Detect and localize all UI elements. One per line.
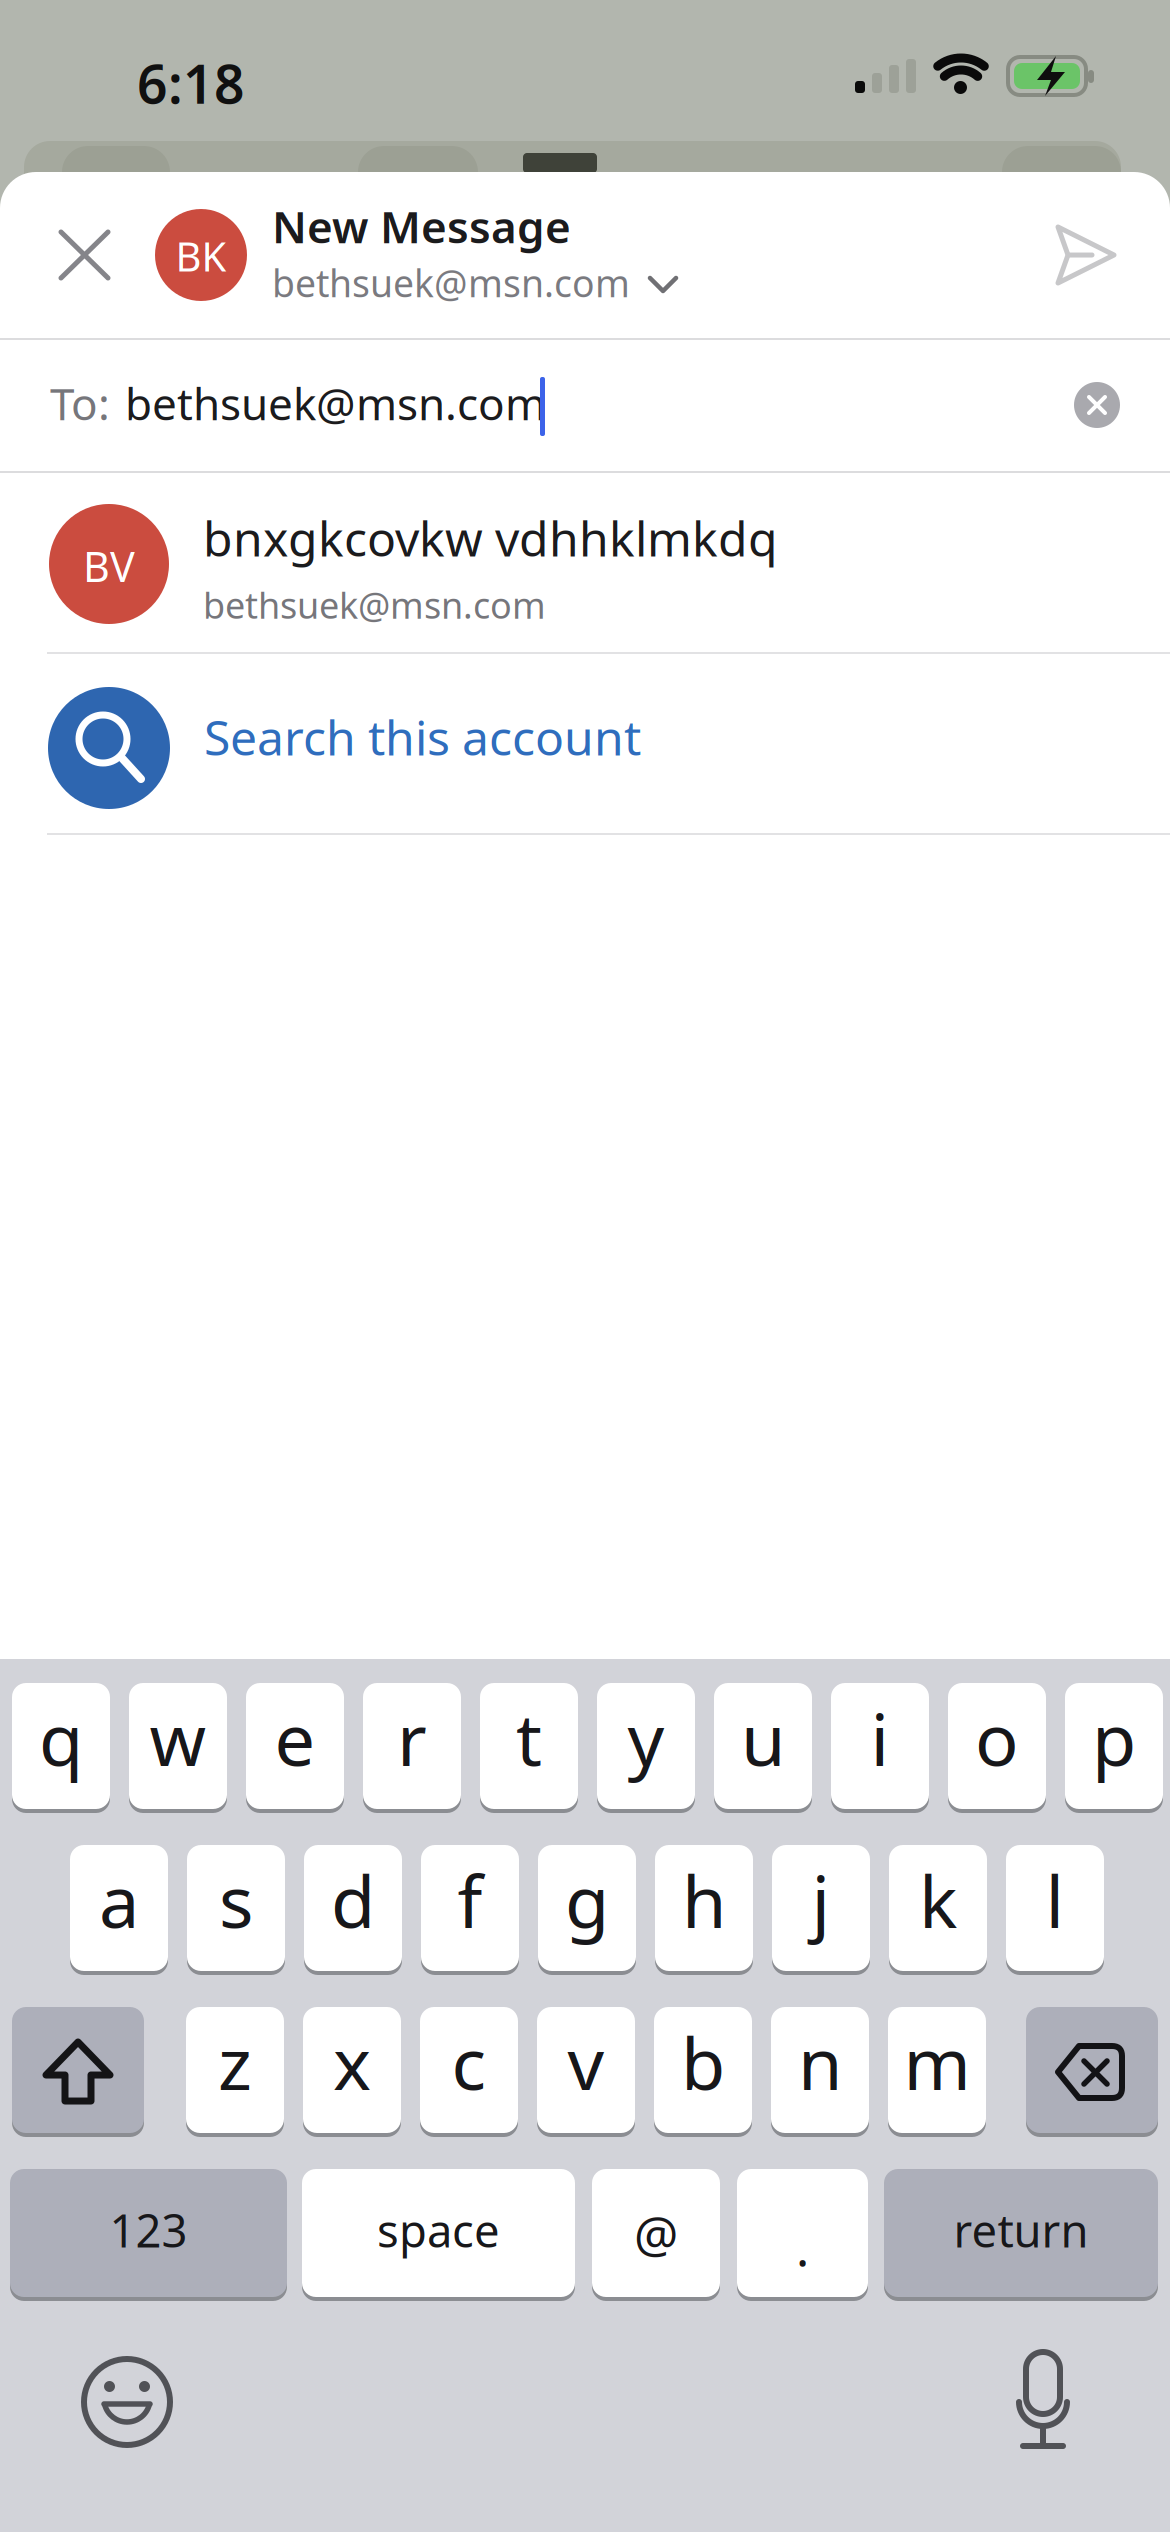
button[interactable]: o xyxy=(948,1683,1046,1809)
staticText: o xyxy=(975,1690,1019,1786)
staticText: z xyxy=(218,2014,252,2110)
button[interactable] xyxy=(1026,2007,1158,2133)
button[interactable] xyxy=(76,2351,178,2453)
button[interactable]: v xyxy=(537,2007,635,2133)
staticText: n xyxy=(798,2014,842,2110)
staticText: BV xyxy=(83,539,135,593)
button[interactable]: p xyxy=(1065,1683,1163,1809)
button[interactable]: r xyxy=(363,1683,461,1809)
staticText: e xyxy=(274,1690,315,1786)
button[interactable]: q xyxy=(12,1683,110,1809)
staticText: q xyxy=(39,1690,83,1786)
staticText: @ xyxy=(634,2200,678,2266)
button[interactable]: 123 xyxy=(10,2169,287,2297)
staticText: j xyxy=(811,1852,830,1948)
staticText: w xyxy=(149,1690,206,1786)
staticText: 123 xyxy=(109,2200,187,2260)
button[interactable]: d xyxy=(304,1845,402,1971)
staticText: u xyxy=(741,1690,785,1786)
staticText: m xyxy=(903,2014,970,2110)
staticText: a xyxy=(99,1852,139,1948)
staticText: bethsuek@msn.com xyxy=(125,374,546,432)
staticText: l xyxy=(1045,1852,1064,1948)
button[interactable]: m xyxy=(888,2007,986,2133)
staticText: r xyxy=(397,1690,427,1786)
button[interactable]: b xyxy=(654,2007,752,2133)
button[interactable]: @ xyxy=(592,2169,720,2297)
button[interactable]: z xyxy=(186,2007,284,2133)
button[interactable]: bethsuek@msn.com xyxy=(260,250,700,310)
button[interactable]: space xyxy=(302,2169,575,2297)
staticText: d xyxy=(331,1852,375,1948)
button[interactable]: n xyxy=(771,2007,869,2133)
button[interactable]: l xyxy=(1006,1845,1104,1971)
staticText: 6:18 xyxy=(137,48,245,118)
staticText: c xyxy=(451,2014,486,2110)
button[interactable] xyxy=(1008,2340,1078,2455)
staticText: v xyxy=(567,2014,604,2110)
staticText: BK xyxy=(175,229,226,282)
staticText: f xyxy=(457,1852,482,1948)
button[interactable] xyxy=(1074,382,1120,428)
staticText: h xyxy=(682,1852,726,1948)
staticText: bethsuek@msn.com xyxy=(272,258,630,308)
staticText: s xyxy=(219,1852,253,1948)
button[interactable]: Search this account xyxy=(0,654,1170,834)
button[interactable]: . xyxy=(737,2169,868,2297)
staticText: y xyxy=(627,1690,664,1786)
button[interactable]: k xyxy=(889,1845,987,1971)
button[interactable]: BV xyxy=(0,473,1170,653)
button[interactable] xyxy=(1030,200,1140,310)
button[interactable] xyxy=(40,211,130,301)
button[interactable]: w xyxy=(129,1683,227,1809)
button[interactable]: a xyxy=(70,1845,168,1971)
button[interactable]: s xyxy=(187,1845,285,1971)
staticText: p xyxy=(1092,1690,1136,1786)
button[interactable] xyxy=(12,2007,144,2133)
button[interactable]: f xyxy=(421,1845,519,1971)
staticText: b xyxy=(681,2014,725,2110)
button[interactable]: h xyxy=(655,1845,753,1971)
button[interactable]: t xyxy=(480,1683,578,1809)
button[interactable]: j xyxy=(772,1845,870,1971)
button[interactable]: i xyxy=(831,1683,929,1809)
staticText: g xyxy=(565,1852,609,1948)
button[interactable]: e xyxy=(246,1683,344,1809)
staticText: k xyxy=(919,1852,957,1948)
button[interactable]: c xyxy=(420,2007,518,2133)
staticText: i xyxy=(870,1690,889,1786)
staticText: New Message xyxy=(272,197,571,255)
staticText: return xyxy=(953,2200,1088,2260)
staticText: bethsuek@msn.com xyxy=(203,581,546,629)
button[interactable]: u xyxy=(714,1683,812,1809)
button[interactable]: g xyxy=(538,1845,636,1971)
button[interactable]: return xyxy=(884,2169,1158,2297)
button[interactable]: y xyxy=(597,1683,695,1809)
staticText: bnxgkcovkw vdhhklmkdq xyxy=(203,506,778,570)
staticText: To: xyxy=(50,374,110,432)
staticText: Search this account xyxy=(204,705,641,769)
staticText: x xyxy=(333,2014,371,2110)
button[interactable]: x xyxy=(303,2007,401,2133)
staticText: t xyxy=(516,1690,542,1786)
staticText: . xyxy=(796,2214,809,2280)
staticText: space xyxy=(377,2200,500,2260)
